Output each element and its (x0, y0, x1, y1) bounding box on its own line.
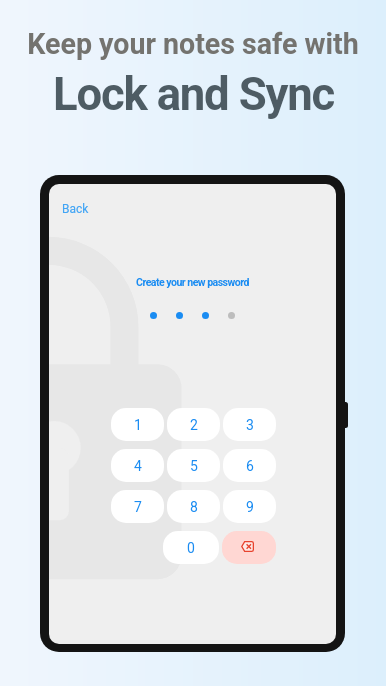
button[interactable]: 0 (163, 531, 219, 564)
staticText: 2 (190, 417, 198, 433)
button[interactable]: Back (56, 199, 95, 219)
button[interactable]: 6 (223, 449, 276, 482)
staticText: 7 (134, 499, 142, 515)
staticText: 0 (187, 540, 195, 556)
staticText: Back (62, 202, 89, 216)
button[interactable]: 8 (167, 490, 220, 523)
button[interactable]: 7 (111, 490, 164, 523)
button[interactable]: Delete (222, 531, 276, 564)
staticText: 4 (134, 458, 142, 474)
button[interactable]: 4 (111, 449, 164, 482)
button[interactable]: 5 (167, 449, 220, 482)
button[interactable]: 3 (223, 408, 276, 441)
staticText: 3 (246, 417, 254, 433)
staticText: 8 (190, 499, 198, 515)
staticText: 6 (246, 458, 254, 474)
staticText: 9 (246, 499, 254, 515)
button[interactable]: 9 (223, 490, 276, 523)
staticText: 5 (190, 458, 198, 474)
staticText: Keep your notes safe with (27, 27, 359, 61)
staticText: Create your new password (136, 276, 249, 288)
button[interactable]: 1 (111, 408, 164, 441)
button[interactable]: 2 (167, 408, 220, 441)
staticText: Lock and Sync (53, 68, 334, 121)
staticText: 1 (134, 417, 142, 433)
